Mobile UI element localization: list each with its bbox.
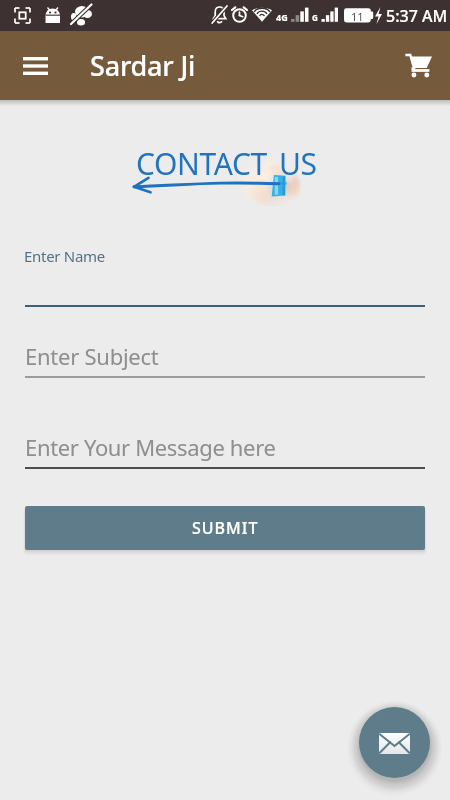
staticText: 5:37 AM (386, 5, 448, 27)
button[interactable]: Enter Your Message here (25, 432, 425, 468)
button[interactable]: Open navigation drawer (12, 43, 58, 89)
button[interactable]: Shopping cart (395, 42, 443, 90)
staticText: US (279, 143, 317, 184)
staticText: Enter Subject (25, 341, 159, 371)
staticText: 4G (276, 11, 288, 23)
button[interactable]: SUBMIT (25, 506, 425, 550)
staticText: Sardar Ji (90, 47, 196, 84)
staticText: SUBMIT (192, 517, 259, 539)
button[interactable]: Enter Subject (25, 341, 425, 377)
staticText: CONTACT (136, 143, 267, 184)
button[interactable]: Send email (359, 707, 430, 778)
staticText: Enter Your Message here (25, 432, 276, 462)
staticText: Enter Name (24, 246, 105, 266)
staticText: G (312, 12, 318, 23)
button[interactable]: Enter Name (25, 243, 425, 308)
staticText: 11 (351, 9, 364, 24)
